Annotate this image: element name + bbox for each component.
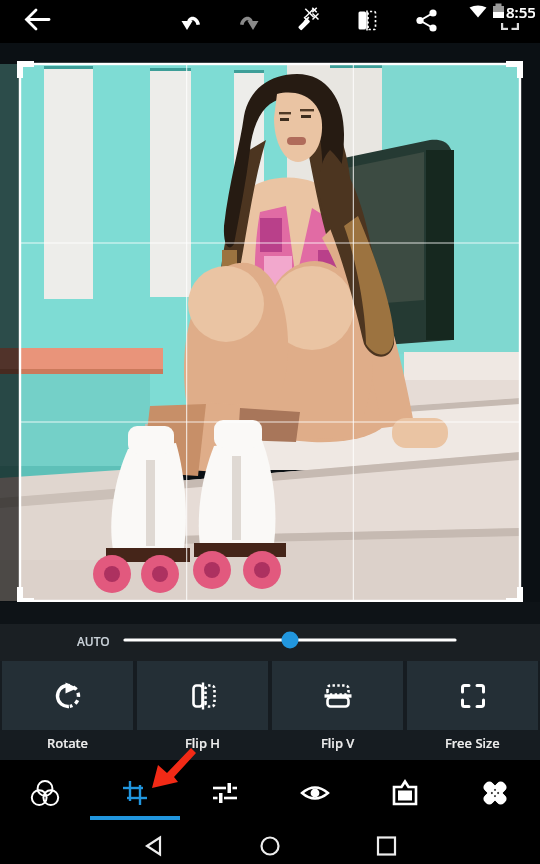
button[interactable]: Compare: [345, 0, 389, 42]
button[interactable]: Flip V: [272, 661, 403, 730]
button[interactable]: Preview: [270, 760, 360, 828]
button[interactable]: Rotate: [2, 661, 133, 730]
staticText: Flip H: [185, 734, 221, 752]
staticText: Flip V: [321, 734, 355, 752]
staticText: 8:55: [506, 2, 536, 22]
button[interactable]: Crop: [90, 760, 180, 828]
button[interactable]: Adjust: [180, 760, 270, 828]
staticText: AUTO: [77, 633, 110, 649]
button[interactable]: Auto enhance: [286, 0, 330, 42]
button[interactable]: Redo: [228, 0, 272, 42]
button[interactable]: Share: [405, 0, 449, 42]
button[interactable]: Frame: [360, 760, 450, 828]
button[interactable]: Heal: [450, 760, 540, 828]
staticText: Free Size: [445, 734, 500, 752]
button[interactable]: Flip H: [137, 661, 268, 730]
button[interactable]: Free Size: [407, 661, 538, 730]
button[interactable]: Undo: [168, 0, 212, 42]
button[interactable]: Back: [15, 0, 61, 41]
staticText: Rotate: [47, 734, 89, 752]
button[interactable]: Effects: [0, 760, 90, 828]
